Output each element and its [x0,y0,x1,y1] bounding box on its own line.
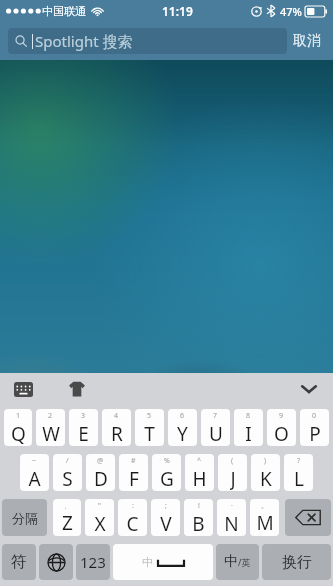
staticText: K [260,466,272,491]
button[interactable]: 0 [300,409,329,446]
staticText: ? [297,456,301,466]
button[interactable]: Switch language [39,544,73,580]
button[interactable]: Theme [64,376,90,402]
staticText: A [28,466,41,491]
staticText: Z [62,510,73,536]
staticText: H [192,466,207,491]
staticText: I [245,421,252,446]
button[interactable]: : [118,499,147,536]
staticText: % [164,456,170,466]
button[interactable]: # [119,454,148,491]
button[interactable]: 7 [201,409,230,446]
button[interactable]: Space [113,544,213,580]
button[interactable]: % [152,454,181,491]
staticText: R [111,421,123,446]
button[interactable]: 分隔 [2,499,47,536]
staticText: O [274,421,289,446]
staticText: 1 [16,411,21,421]
staticText: 11:19 [162,3,193,19]
button[interactable]: Backspace [285,499,331,536]
button[interactable]: 3 [69,409,98,446]
staticText: Spotlight 搜索 [35,31,133,51]
staticText: W [42,421,60,446]
staticText: V [160,511,172,536]
staticText: 3 [81,411,86,421]
staticText: ) [264,456,267,466]
staticText: D [94,466,108,491]
staticText: Q [11,421,26,446]
button[interactable]: 8 [234,409,263,446]
button[interactable]: 6 [168,409,197,446]
staticText: M [256,510,274,536]
button[interactable]: 1 [4,409,32,446]
staticText: T [144,421,155,446]
button[interactable]: Keyboard layout [10,376,36,402]
staticText: 5 [147,411,152,421]
staticText: @ [97,456,104,466]
button[interactable]: 符 [2,544,36,580]
button[interactable]: ^ [185,454,214,491]
staticText: ; [165,501,167,511]
staticText: / [66,456,69,466]
staticText: 9 [279,411,284,421]
staticText: S [62,466,73,491]
staticText: 取消 [293,32,321,50]
staticText: ( [231,456,234,466]
staticText: P [309,421,321,446]
button[interactable]: 换行 [262,544,331,580]
button[interactable]: ~ [20,454,49,491]
staticText: X [94,511,106,536]
button[interactable]: ) [251,454,280,491]
staticText: 、 [64,501,71,510]
button[interactable]: ( [218,454,247,491]
button[interactable]: / [53,454,82,491]
staticText: G [160,466,174,491]
staticText: 6 [180,411,185,421]
button[interactable]: Hide keyboard [295,375,323,403]
staticText: L [294,466,304,491]
staticText: 分隔 [12,510,38,526]
button[interactable]: · [217,499,246,536]
button[interactable]: 5 [135,409,164,446]
staticText: 8 [246,411,251,421]
button[interactable]: 123 [76,544,110,580]
staticText: 中 [224,553,238,571]
staticText: # [131,456,136,466]
staticText: ^ [197,456,202,466]
button[interactable]: ! [184,499,213,536]
staticText: F [129,466,139,491]
staticText: 中 [142,555,153,569]
button[interactable]: ? [284,454,313,491]
staticText: J [230,466,236,491]
staticText: /英 [238,556,251,568]
button[interactable]: 、 [53,499,81,536]
button[interactable]: @ [86,454,115,491]
staticText: 0 [312,411,317,421]
staticText: U [209,421,223,446]
staticText: 。 [261,501,268,510]
button[interactable]: 9 [267,409,296,446]
staticText: · [231,501,233,511]
staticText: : [132,501,134,511]
staticText: 7 [213,411,218,421]
staticText: ! [198,501,200,511]
staticText: 中国联通 [42,4,86,18]
staticText: 换行 [282,553,312,572]
button[interactable]: ; [151,499,180,536]
button[interactable]: 4 [102,409,131,446]
staticText: 符 [11,552,27,572]
button[interactable]: Spotlight 搜索 [8,28,287,54]
button[interactable]: 。 [250,499,279,536]
staticText: Y [177,421,188,446]
button[interactable]: 2 [36,409,65,446]
button[interactable]: " [85,499,114,536]
staticText: 4 [114,411,119,421]
staticText: 47% [280,4,302,19]
staticText: C [126,511,139,536]
staticText: B [192,511,205,536]
button[interactable]: 中 [216,544,259,580]
staticText: 123 [80,552,106,572]
button[interactable]: 取消 [287,28,327,54]
staticText: N [224,511,239,536]
staticText: 2 [48,411,53,421]
